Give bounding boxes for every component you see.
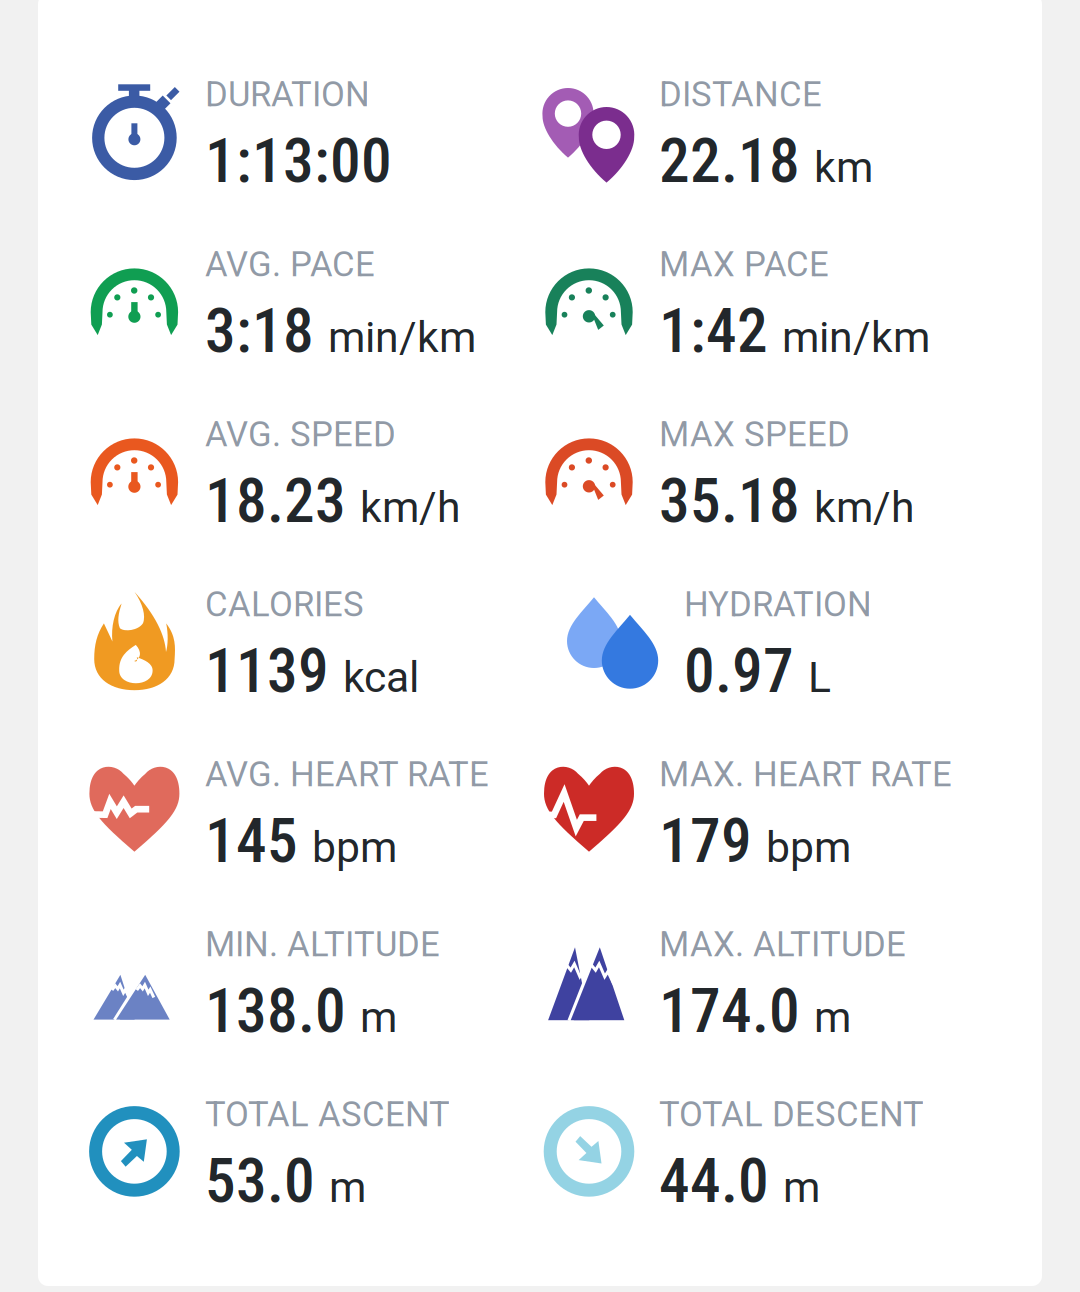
staticText: bpm	[766, 822, 851, 872]
staticText: AVG. HEART RATE	[205, 754, 489, 795]
staticText: MIN. ALTITUDE	[205, 924, 440, 965]
staticText: MAX. HEART RATE	[659, 754, 952, 795]
staticText: CALORIES	[205, 584, 364, 625]
staticText: TOTAL ASCENT	[205, 1094, 450, 1135]
staticText: 1:42	[659, 295, 768, 367]
staticText: AVG. SPEED	[205, 414, 396, 455]
staticText: km/h	[814, 482, 915, 532]
staticText: 179	[659, 805, 752, 877]
staticText: 1139	[205, 635, 329, 707]
staticText: DISTANCE	[659, 74, 822, 115]
staticText: m	[814, 992, 851, 1042]
staticText: 35.18	[659, 465, 800, 537]
staticText: 44.0	[659, 1145, 769, 1217]
staticText: MAX. ALTITUDE	[659, 924, 906, 965]
staticText: m	[329, 1162, 366, 1212]
staticText: AVG. PACE	[205, 244, 375, 285]
staticText: kcal	[343, 652, 419, 702]
staticText: m	[783, 1162, 820, 1212]
staticText: 138.0	[205, 975, 346, 1047]
staticText: 174.0	[659, 975, 800, 1047]
staticText: 53.0	[205, 1145, 315, 1217]
staticText: min/km	[328, 312, 476, 362]
staticText: DURATION	[205, 74, 370, 115]
staticText: m	[360, 992, 397, 1042]
staticText: km/h	[360, 482, 461, 532]
staticText: 3:18	[205, 295, 314, 367]
staticText: HYDRATION	[684, 584, 872, 625]
staticText: L	[808, 652, 831, 702]
staticText: min/km	[782, 312, 930, 362]
staticText: 0.97	[684, 635, 794, 707]
staticText: km	[814, 142, 873, 192]
staticText: 18.23	[205, 465, 346, 537]
staticText: 22.18	[659, 125, 800, 197]
staticText: bpm	[312, 822, 397, 872]
staticText: TOTAL DESCENT	[659, 1094, 924, 1135]
staticText: 145	[205, 805, 298, 877]
staticText: MAX SPEED	[659, 414, 850, 455]
staticText: 1:13:00	[205, 125, 392, 197]
staticText: MAX PACE	[659, 244, 829, 285]
